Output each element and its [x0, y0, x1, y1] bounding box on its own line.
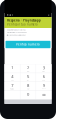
button[interactable]: 5 [20, 73, 36, 82]
button[interactable]: Non hai ricevuto il codice? [7, 34, 49, 36]
button[interactable]: 4 [4, 73, 20, 82]
staticText: 5 [27, 74, 29, 79]
staticText: Verifica numero [16, 43, 40, 46]
staticText: Hesperia · Playlistsapp [7, 19, 41, 22]
staticText: 4 [11, 74, 13, 79]
staticText: 1 [11, 65, 13, 70]
button[interactable]: 7 [4, 82, 20, 91]
button[interactable]: 9 [36, 82, 52, 91]
staticText: GHI [11, 79, 13, 81]
staticText: Non hai ricevuto il codice? [9, 34, 26, 36]
staticText: ▮▮ [47, 14, 49, 16]
button[interactable]: 3 [36, 64, 52, 73]
button[interactable]: 0 [20, 91, 36, 99]
staticText: 2 [27, 65, 29, 70]
button[interactable]: Verifica numero [5, 41, 50, 48]
staticText: MNO [42, 79, 45, 81]
staticText: DEF [42, 70, 45, 72]
staticText: JKL [27, 79, 29, 81]
staticText: 6 [43, 74, 45, 79]
staticText: 7 [11, 83, 13, 88]
button[interactable]: 2 [20, 64, 36, 73]
staticText: Abbiamo inviato un codice via [7, 29, 26, 31]
staticText: 0 [27, 92, 29, 97]
staticText: 9:41 [6, 13, 13, 17]
staticText: PQRS [10, 88, 14, 90]
staticText: WXYZ [42, 88, 46, 90]
staticText: SMS al numero +39 333 0000. [7, 32, 27, 33]
staticText: 3 [43, 65, 45, 70]
button[interactable]: Delete [36, 91, 52, 99]
staticText: 9 [43, 83, 45, 88]
staticText: ⌫ [42, 94, 46, 97]
button[interactable]: 8 [20, 82, 36, 91]
button[interactable]: 1 [4, 64, 20, 73]
staticText: TUV [26, 88, 29, 90]
staticText: 8 [27, 83, 29, 88]
staticText: Verifica il tuo numero [7, 23, 38, 26]
staticText: ABC [26, 70, 29, 72]
button[interactable]: 6 [36, 73, 52, 82]
